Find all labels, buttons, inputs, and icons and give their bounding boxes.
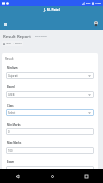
- staticText: Level: [6, 42, 12, 45]
- staticText: Min Marks: [7, 123, 21, 127]
- staticText: Report: [15, 42, 22, 45]
- staticText: Max Marks: [7, 141, 22, 145]
- button[interactable]: GSEB: [8, 91, 91, 98]
- staticText: 50%: [86, 2, 91, 5]
- staticText: Medium: [7, 66, 18, 70]
- button[interactable]: Recents: [80, 170, 92, 182]
- staticText: Class: [7, 104, 14, 108]
- staticText: J. M. Patel: [44, 8, 60, 12]
- staticText: Result Report: [3, 33, 31, 39]
- button[interactable]: 0: [8, 128, 91, 135]
- staticText: GSEB: [8, 93, 15, 97]
- button[interactable]: Select: [8, 109, 91, 116]
- staticText: Exam: [7, 160, 15, 164]
- button[interactable]: [8, 166, 91, 173]
- button[interactable]: Level: [3, 41, 22, 46]
- button[interactable]: Back: [11, 170, 23, 182]
- staticText: Result Report: [35, 35, 47, 38]
- staticText: Gujarati: [8, 74, 18, 78]
- staticText: 12:34: [95, 2, 101, 5]
- staticText: 0: [8, 130, 10, 134]
- button[interactable]: Home: [46, 170, 58, 182]
- button[interactable]: Profile: [92, 19, 100, 27]
- staticText: Board: [7, 85, 15, 89]
- button[interactable]: Menu: [1, 20, 10, 29]
- button[interactable]: Gujarati: [8, 72, 91, 79]
- staticText: -: [13, 42, 14, 45]
- button[interactable]: 100: [8, 147, 91, 154]
- staticText: Select: [8, 111, 16, 115]
- staticText: 100: [8, 149, 13, 153]
- staticText: Result: [5, 57, 14, 61]
